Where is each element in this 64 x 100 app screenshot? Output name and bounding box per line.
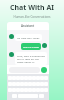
staticText: Tell me a joke	[23, 45, 39, 48]
staticText: Human-like Conversations	[13, 15, 51, 19]
staticText: Chat With AI	[10, 3, 54, 13]
staticText: Assistant	[21, 24, 35, 28]
staticText: Sure, here is something fun to read for …	[17, 54, 45, 63]
staticText: Hi! How can I help?	[17, 36, 40, 39]
